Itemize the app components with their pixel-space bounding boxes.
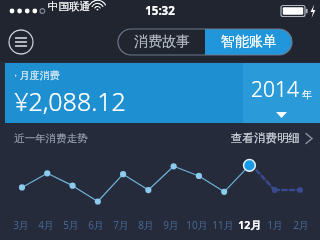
button[interactable]: 智能账单 [205,29,292,55]
staticText: 中国联通 [48,0,90,13]
staticText: 年 [302,89,312,101]
staticText: 5月 [63,218,79,232]
button[interactable]: 查看消费明细 [225,127,320,149]
staticText: 智能账单 [221,33,277,51]
button[interactable]: Select year [243,63,320,123]
staticText: 12月 [238,218,261,232]
staticText: 消费故事 [134,33,190,51]
button[interactable]: Menu [8,29,34,55]
staticText: · 月度消费 [14,68,60,82]
staticText: ¥2,088.12 [14,84,126,118]
staticText: 11月 [212,218,234,232]
staticText: 1月 [267,218,283,232]
staticText: 10月 [186,218,208,232]
staticText: 4月 [38,218,54,232]
staticText: 2月 [293,218,309,232]
button[interactable]: · 月度消费 [5,63,243,123]
staticText: 8月 [138,218,154,232]
staticText: 6月 [88,218,104,232]
staticText: 7月 [113,218,129,232]
staticText: 2014 [251,75,299,104]
staticText: 近一年消费走势 [14,132,88,145]
button[interactable]: 消费故事 [118,29,205,55]
staticText: 15:32 [145,3,175,19]
staticText: 9月 [163,218,179,232]
staticText: 查看消费明细 [231,131,300,145]
staticText: 3月 [13,218,29,232]
